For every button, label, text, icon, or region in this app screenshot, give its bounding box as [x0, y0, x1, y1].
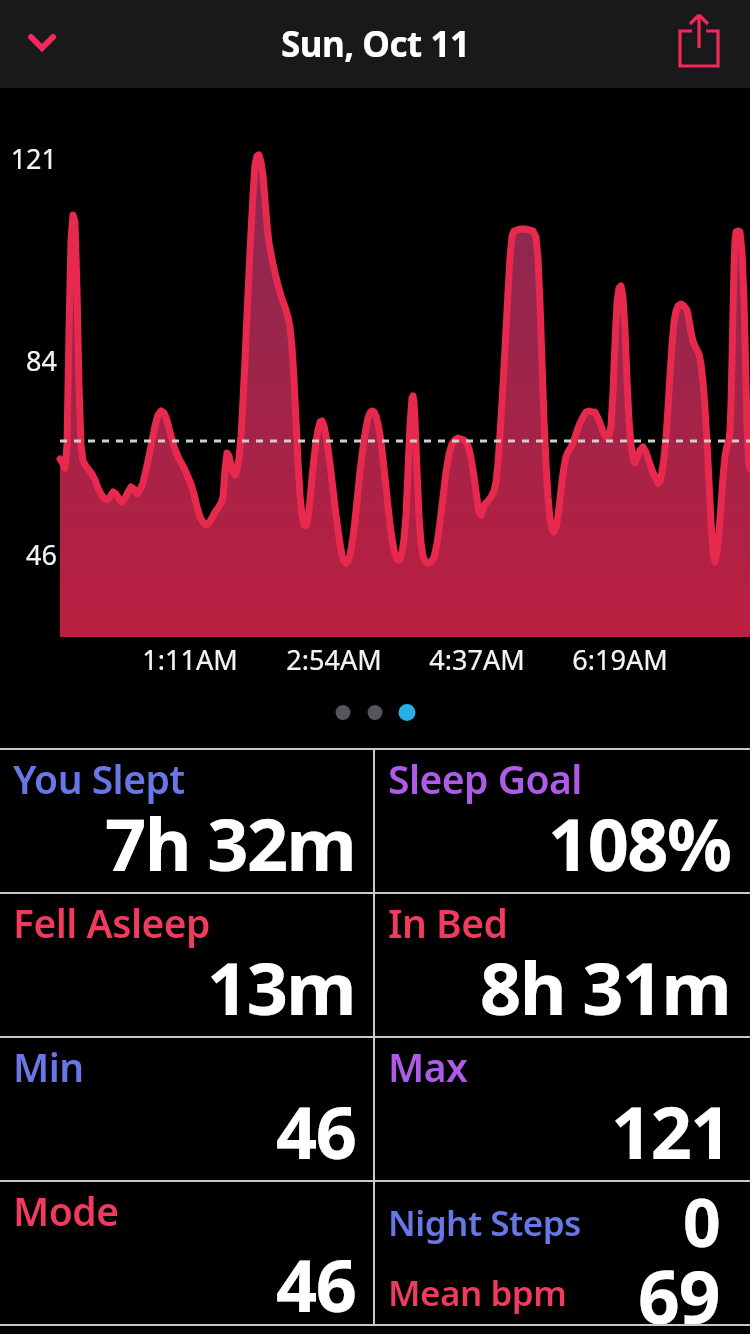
- button[interactable]: Max: [375, 1038, 750, 1180]
- staticText: Sun, Oct 11: [281, 20, 470, 68]
- button[interactable]: Mode: [0, 1182, 373, 1324]
- staticText: Min: [13, 1040, 84, 1093]
- staticText: 46: [276, 1082, 356, 1180]
- staticText: 69: [638, 1246, 720, 1334]
- staticText: 46: [5, 536, 57, 573]
- staticText: 0: [683, 1176, 720, 1266]
- button[interactable]: You Slept: [0, 750, 373, 892]
- staticText: Night Steps: [388, 1199, 581, 1247]
- button[interactable]: Night Steps: [375, 1182, 750, 1324]
- button[interactable]: Sleep Goal: [375, 750, 750, 892]
- staticText: Max: [388, 1040, 468, 1093]
- staticText: 121: [611, 1082, 731, 1180]
- staticText: 7h 32m: [105, 794, 356, 892]
- button[interactable]: [18, 20, 66, 68]
- button[interactable]: In Bed: [375, 894, 750, 1036]
- staticText: 6:19AM: [550, 641, 690, 678]
- staticText: In Bed: [388, 896, 508, 949]
- staticText: Fell Asleep: [13, 896, 211, 949]
- button[interactable]: Min: [0, 1038, 373, 1180]
- staticText: You Slept: [13, 752, 185, 805]
- staticText: Sleep Goal: [388, 752, 582, 805]
- staticText: Mode: [13, 1184, 119, 1237]
- staticText: 13m: [207, 938, 356, 1036]
- button[interactable]: [680, 17, 734, 71]
- staticText: 108%: [548, 794, 731, 892]
- staticText: 121: [5, 140, 57, 177]
- button[interactable]: Fell Asleep: [0, 894, 373, 1036]
- staticText: 1:11AM: [120, 641, 260, 678]
- staticText: Mean bpm: [388, 1269, 567, 1317]
- staticText: 46: [276, 1235, 356, 1333]
- staticText: 4:37AM: [407, 641, 547, 678]
- staticText: 8h 31m: [480, 938, 731, 1036]
- staticText: 2:54AM: [264, 641, 404, 678]
- staticText: 84: [5, 342, 57, 379]
